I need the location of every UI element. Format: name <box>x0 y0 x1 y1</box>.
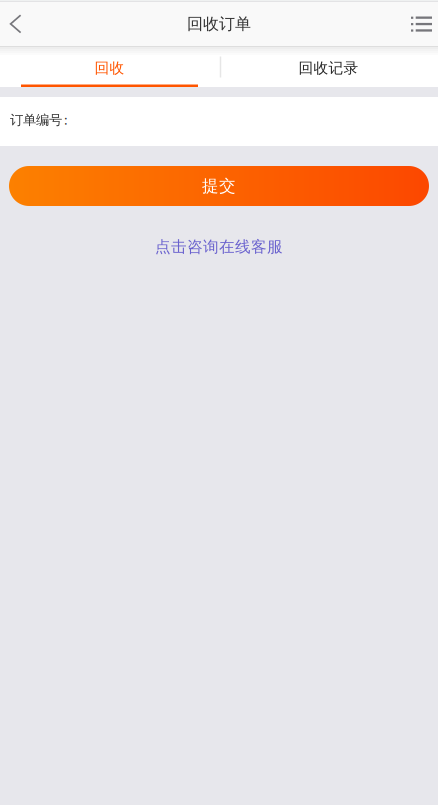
staticText: 回收记录 <box>298 59 358 77</box>
staticText: 提交 <box>202 176 236 196</box>
staticText: 点击咨询在线客服 <box>155 237 283 257</box>
button[interactable]: Back <box>0 2 40 46</box>
button[interactable]: Menu <box>394 2 438 46</box>
staticText: 回收 <box>94 59 124 77</box>
button[interactable]: 回收记录 <box>219 47 438 87</box>
button[interactable]: 点击咨询在线客服 <box>143 230 295 264</box>
button[interactable]: 回收 <box>0 47 219 87</box>
staticText: 订单编号 : <box>10 110 68 129</box>
button[interactable]: 提交 <box>9 166 429 206</box>
staticText: 回收订单 <box>187 14 251 34</box>
